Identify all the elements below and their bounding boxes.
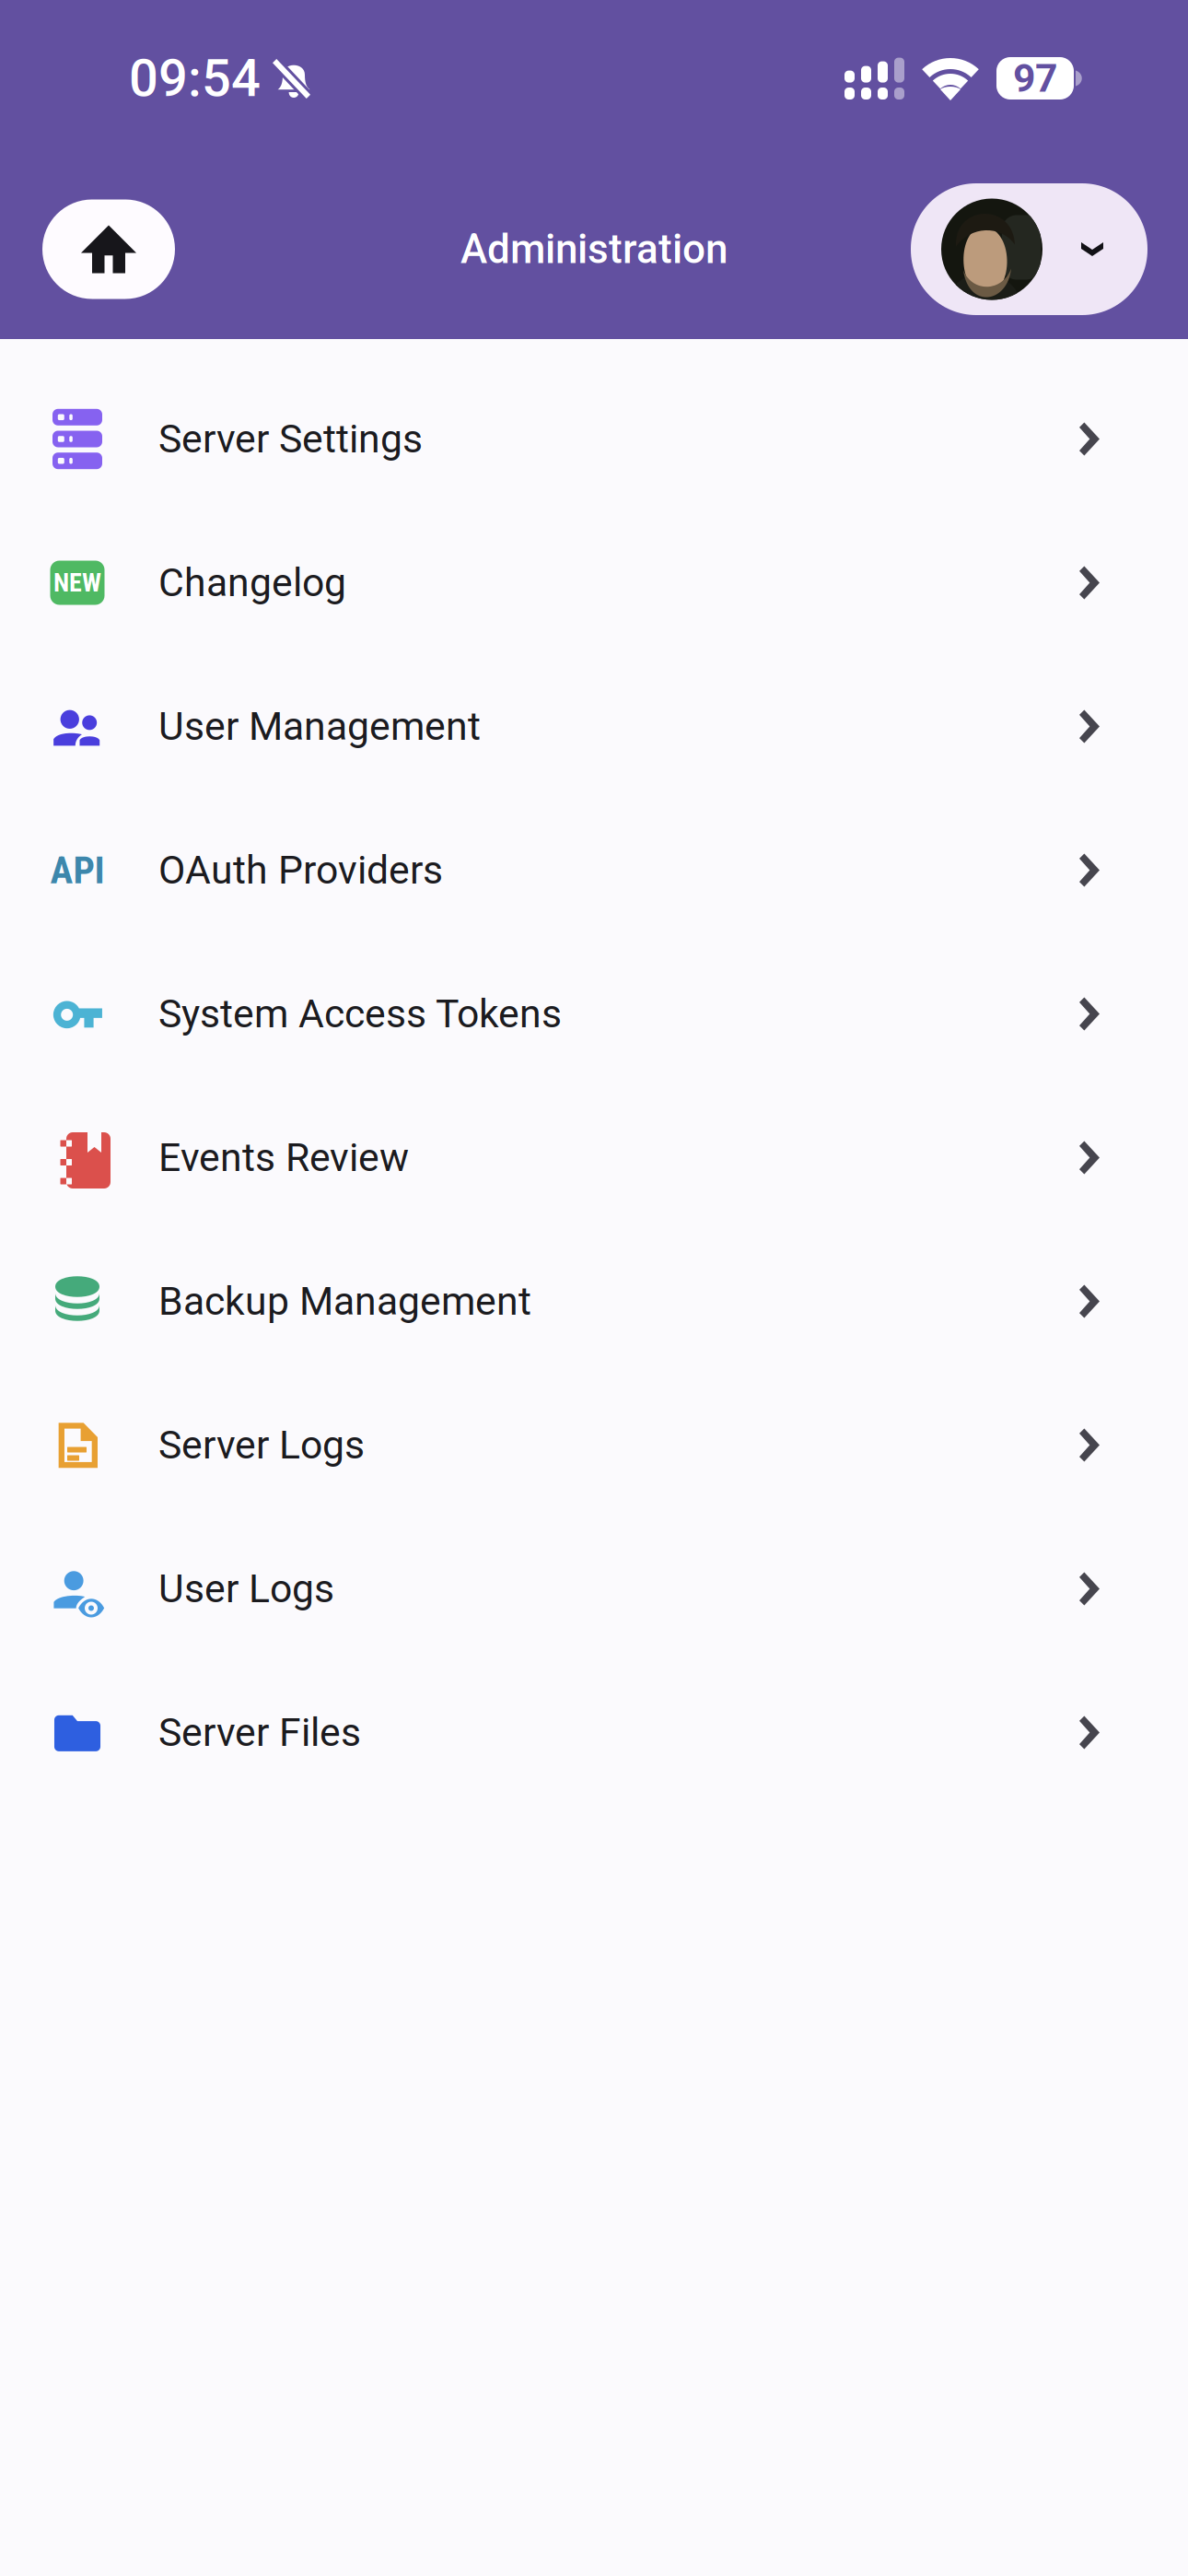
button[interactable]: User Logs	[0, 1517, 1188, 1661]
staticText: API	[50, 848, 105, 892]
staticText: Backup Management	[158, 1278, 531, 1324]
button[interactable]: Home	[42, 199, 175, 299]
staticText: Server Settings	[158, 416, 423, 462]
staticText: User Management	[158, 703, 481, 749]
button[interactable]: User Management	[0, 655, 1188, 798]
button[interactable]: Server Logs	[0, 1373, 1188, 1517]
staticText: Events Review	[158, 1135, 409, 1181]
staticText: 09:54	[129, 48, 261, 109]
button[interactable]: Backup Management	[0, 1229, 1188, 1373]
staticText: System Access Tokens	[158, 991, 562, 1037]
staticText: Server Files	[158, 1710, 361, 1756]
staticText: Server Logs	[158, 1422, 365, 1468]
button[interactable]: Server Files	[0, 1661, 1188, 1804]
staticText: Administration	[460, 225, 728, 273]
button[interactable]: System Access Tokens	[0, 942, 1188, 1086]
staticText: NEW	[53, 568, 101, 598]
button[interactable]: NEW	[0, 511, 1188, 655]
staticText: User Logs	[158, 1566, 334, 1612]
staticText: OAuth Providers	[158, 847, 443, 893]
button[interactable]: Events Review	[0, 1086, 1188, 1229]
button[interactable]: Server Settings	[0, 367, 1188, 511]
staticText: 97	[1013, 55, 1057, 101]
button[interactable]: API	[0, 798, 1188, 942]
staticText: Changelog	[158, 560, 346, 606]
button[interactable]: Account menu	[911, 183, 1147, 315]
